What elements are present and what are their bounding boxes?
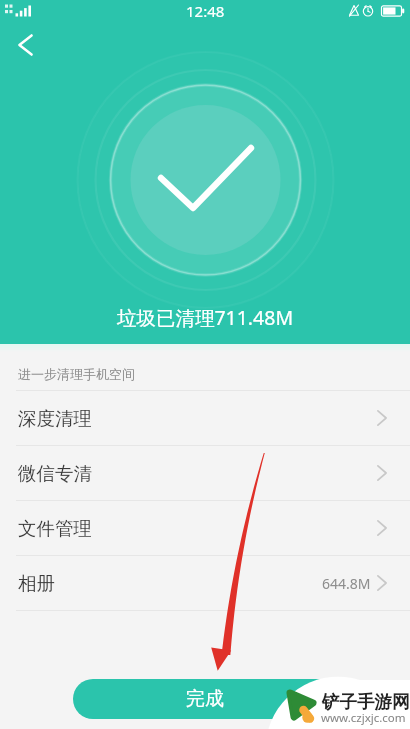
staticText: 深度清理 <box>18 407 92 430</box>
staticText: 垃圾已清理711.48M <box>0 304 410 331</box>
button[interactable]: 完成 <box>73 679 337 719</box>
staticText: 完成 <box>186 687 224 711</box>
staticText: 12:48 <box>186 1 225 21</box>
button[interactable]: 微信专清 <box>0 446 410 500</box>
staticText: 文件管理 <box>18 517 92 540</box>
staticText: 进一步清理手机空间 <box>18 366 135 382</box>
button[interactable]: 深度清理 <box>0 391 410 445</box>
staticText: 644.8M <box>322 574 371 593</box>
button[interactable]: Back <box>6 26 44 64</box>
button[interactable]: 相册 <box>0 556 410 610</box>
staticText: 铲子手游网 <box>322 691 410 713</box>
staticText: 微信专清 <box>18 462 92 485</box>
button[interactable]: 文件管理 <box>0 501 410 555</box>
staticText: 相册 <box>18 572 55 595</box>
staticText: www.czjxjc.com <box>321 710 406 726</box>
